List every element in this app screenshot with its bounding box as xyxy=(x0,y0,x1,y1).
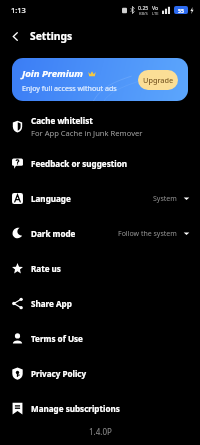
button[interactable]: Share App xyxy=(0,286,200,321)
staticText: Upgrade xyxy=(143,75,174,85)
button[interactable]: Manage subscriptions xyxy=(0,391,200,426)
staticText: Manage subscriptions xyxy=(31,403,120,414)
staticText: Vo xyxy=(152,4,159,11)
staticText: Share App xyxy=(31,298,72,309)
staticText: Feedback or suggestion xyxy=(31,158,127,169)
staticText: 1.4.0P xyxy=(89,426,112,437)
button[interactable]: Feedback or suggestion xyxy=(0,146,200,181)
staticText: Terms of Use xyxy=(31,333,83,344)
button[interactable]: Language xyxy=(0,181,200,216)
button[interactable]: Privacy Policy xyxy=(0,356,200,391)
staticText: Dark mode xyxy=(31,228,76,239)
staticText: Follow the system xyxy=(118,229,177,239)
button[interactable]: Back xyxy=(0,21,30,51)
staticText: Rate us xyxy=(31,263,61,274)
staticText: 1:13 xyxy=(11,5,26,15)
staticText: 55 xyxy=(178,7,184,14)
staticText: KB/S xyxy=(139,11,148,16)
staticText: System xyxy=(153,194,177,204)
staticText: Language xyxy=(31,193,71,204)
button[interactable]: Rate us xyxy=(0,251,200,286)
staticText: Privacy Policy xyxy=(31,368,87,379)
staticText: Settings xyxy=(30,29,73,43)
staticText: Join Premium xyxy=(22,67,84,80)
button[interactable]: Upgrade xyxy=(138,70,178,90)
staticText: LTE xyxy=(152,11,159,16)
staticText: 0.25 xyxy=(138,4,149,11)
button[interactable]: Join Premium xyxy=(12,58,188,101)
staticText: Enjoy full access without ads xyxy=(22,83,117,93)
staticText: Cache whitelist xyxy=(31,115,93,126)
button[interactable]: Cache whitelist xyxy=(0,107,200,146)
staticText: For App Cache in Junk Remover xyxy=(31,128,143,138)
button[interactable]: Terms of Use xyxy=(0,321,200,356)
button[interactable]: Dark mode xyxy=(0,216,200,251)
